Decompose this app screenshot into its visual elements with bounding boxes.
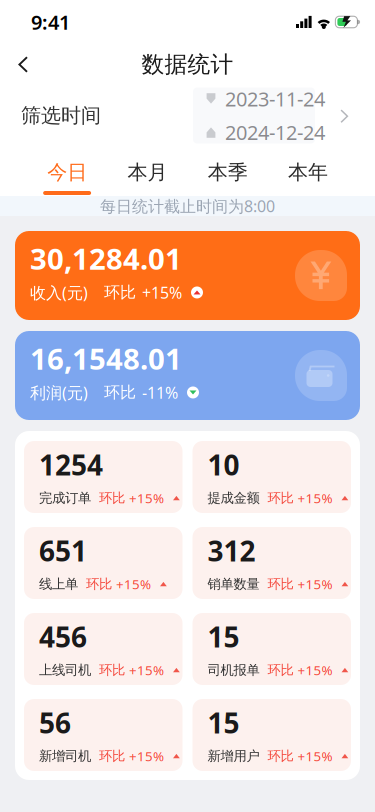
staticText: +15% [116, 575, 151, 593]
staticText: 本年 [288, 160, 328, 185]
staticText: 每日统计截止时间为8:00 [100, 195, 275, 217]
staticText: 环比 [267, 662, 293, 678]
staticText: 10 [207, 446, 239, 483]
button[interactable]: 1254 [24, 441, 182, 513]
staticText: 环比 [86, 576, 112, 592]
staticText: +15% [142, 282, 182, 303]
staticText: +15% [297, 575, 332, 593]
staticText: 312 [207, 532, 255, 569]
staticText: 9:41 [31, 9, 70, 35]
staticText: 环比 [267, 490, 293, 506]
staticText: 利润(元) [30, 382, 88, 403]
button[interactable]: 56 [24, 699, 182, 771]
button[interactable]: 今日 [27, 146, 107, 196]
button[interactable]: 本月 [107, 146, 187, 196]
staticText: 30,1284.01 [30, 239, 182, 278]
button[interactable]: 651 [24, 527, 182, 599]
staticText: 环比 [99, 662, 125, 678]
staticText: 数据统计 [141, 51, 233, 78]
staticText: 完成订单 [39, 490, 91, 506]
button[interactable]: 15 [192, 699, 351, 771]
staticText: 15 [207, 618, 239, 655]
staticText: 651 [39, 532, 87, 569]
staticText: +15% [129, 661, 164, 679]
staticText: 新增司机 [39, 748, 91, 764]
staticText: 环比 [99, 748, 125, 764]
button[interactable]: 10 [192, 441, 351, 513]
staticText: 今日 [47, 160, 87, 185]
staticText: 上线司机 [39, 662, 91, 678]
button[interactable]: 312 [192, 527, 351, 599]
staticText: 环比 [267, 576, 293, 592]
staticText: 线上单 [39, 576, 78, 592]
staticText: 16,1548.01 [30, 339, 182, 378]
button[interactable]: 456 [24, 613, 182, 685]
staticText: +15% [129, 489, 164, 507]
button[interactable]: 本年 [268, 146, 348, 196]
button[interactable]: 本季 [187, 146, 268, 196]
staticText: +15% [297, 489, 332, 507]
staticText: 新增用户 [207, 748, 259, 764]
staticText: 56 [39, 704, 71, 741]
staticText: 本月 [127, 160, 167, 185]
staticText: 司机报单 [207, 662, 259, 678]
staticText: +15% [129, 747, 164, 765]
staticText: 456 [39, 618, 87, 655]
staticText: 环比 [99, 490, 125, 506]
staticText: 销单数量 [207, 576, 259, 592]
staticText: 提成金额 [207, 490, 259, 506]
staticText: 1254 [39, 446, 103, 483]
staticText: 筛选时间 [21, 103, 101, 128]
staticText: 2023-11-24 [225, 85, 325, 112]
button[interactable]: 15 [192, 613, 351, 685]
staticText: -11% [142, 382, 178, 403]
staticText: 环比 [104, 383, 136, 402]
staticText: 15 [207, 704, 239, 741]
staticText: 本季 [208, 160, 248, 185]
button[interactable]: 返回 [0, 44, 42, 85]
button[interactable]: 筛选时间 [0, 85, 375, 146]
staticText: +15% [297, 661, 332, 679]
staticText: +15% [297, 747, 332, 765]
staticText: 环比 [104, 283, 136, 302]
staticText: 2024-12-24 [225, 119, 325, 146]
staticText: 收入(元) [30, 282, 88, 303]
staticText: 环比 [267, 748, 293, 764]
